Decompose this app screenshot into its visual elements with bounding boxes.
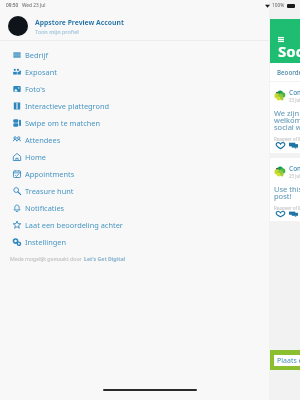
staticText: Reageer of like dit bericht: [274, 205, 300, 211]
staticText: Notificaties: [25, 203, 65, 213]
button[interactable]: Bedrijf: [0, 46, 269, 63]
staticText: 100%: [272, 2, 285, 9]
staticText: We zijn gestart, welkom op onze social w…: [274, 108, 300, 133]
staticText: Toon mijn profiel: [35, 28, 79, 35]
button[interactable]: Comment: [289, 142, 298, 149]
button[interactable]: Treasure hunt: [0, 182, 269, 199]
staticText: Treasure hunt: [25, 186, 74, 196]
button[interactable]: Exposant: [0, 63, 269, 80]
staticText: Bedrijf: [25, 50, 48, 60]
staticText: Home: [25, 152, 47, 162]
staticText: Reageer of like dit bericht: [274, 136, 300, 142]
staticText: Beoordelingen: [277, 68, 300, 76]
staticText: Laat een beoordeling achter: [25, 220, 123, 230]
button[interactable]: Comment: [289, 211, 298, 217]
staticText: 23 Jul 09:40: [289, 173, 300, 179]
button[interactable]: Swipe om te matchen: [0, 114, 269, 131]
staticText: Appstore Preview Account: [35, 18, 124, 27]
button[interactable]: Appstore Preview Account: [0, 14, 269, 40]
staticText: Company: [289, 164, 300, 173]
staticText: Plaats een bericht: [277, 356, 300, 366]
button[interactable]: Interactieve plattegrond: [0, 97, 269, 114]
staticText: 23 Jul 09:40: [289, 97, 300, 103]
staticText: Exposant: [25, 67, 57, 77]
button[interactable]: Menu: [278, 37, 284, 42]
button[interactable]: Like: [276, 142, 285, 149]
button[interactable]: Instellingen: [0, 233, 269, 250]
staticText: Mede mogelijk gemaakt door: [10, 255, 84, 262]
button[interactable]: Like: [276, 211, 285, 217]
button[interactable]: Notificaties: [0, 199, 269, 216]
button[interactable]: Plaats een bericht: [274, 355, 300, 366]
button[interactable]: Appointments: [0, 165, 269, 182]
staticText: Use this app to post!: [274, 184, 300, 202]
staticText: Appointments: [25, 169, 75, 179]
staticText: 09:50: [6, 2, 19, 9]
staticText: Swipe om te matchen: [25, 118, 101, 128]
staticText: Company: [289, 88, 300, 97]
staticText: Instellingen: [25, 237, 67, 247]
staticText: Foto's: [25, 84, 46, 94]
staticText: Attendees: [25, 135, 61, 145]
button[interactable]: Foto's: [0, 80, 269, 97]
staticText: Wed 23 Jul: [22, 2, 46, 9]
button[interactable]: Attendees: [0, 131, 269, 148]
button[interactable]: Home: [0, 148, 269, 165]
staticText: Let's Get Digital: [84, 255, 126, 262]
staticText: Interactieve plattegrond: [25, 101, 110, 111]
button[interactable]: Laat een beoordeling achter: [0, 216, 269, 233]
staticText: Social wall: [278, 41, 300, 61]
